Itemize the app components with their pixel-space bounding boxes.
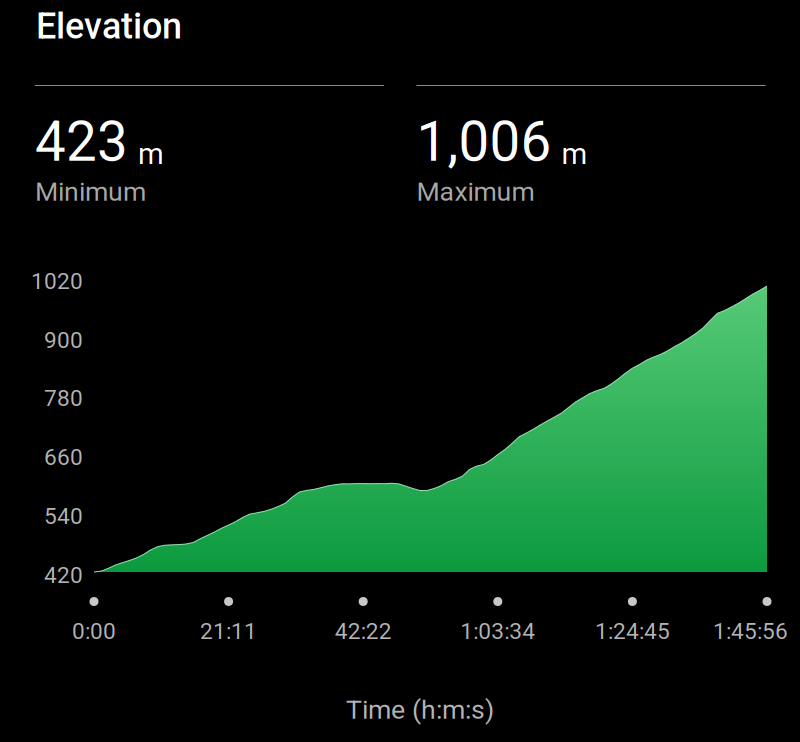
staticText: 42:22	[335, 618, 392, 645]
staticText: Elevation	[36, 5, 182, 47]
staticText: Maximum	[416, 176, 534, 207]
staticText: m	[561, 137, 587, 171]
staticText: 1,006	[416, 110, 551, 174]
staticText: 540	[44, 503, 83, 530]
staticText: 423	[35, 110, 128, 174]
staticText: 0:00	[72, 618, 116, 645]
staticText: 21:11	[200, 618, 257, 645]
staticText: 780	[44, 385, 83, 412]
staticText: 660	[44, 444, 83, 471]
staticText: 1:03:34	[460, 618, 535, 645]
staticText: 900	[44, 327, 83, 354]
staticText: 1:45:56	[713, 618, 788, 645]
button[interactable]: Elevation chart, 423 to 1,006 metres ove…	[94, 286, 767, 572]
staticText: m	[138, 137, 164, 171]
staticText: 1:24:45	[595, 618, 670, 645]
staticText: Minimum	[35, 176, 146, 207]
button[interactable]: 1,006	[416, 85, 765, 207]
staticText: 1020	[31, 268, 83, 295]
button[interactable]: 423	[35, 85, 384, 207]
staticText: Time (h:m:s)	[346, 694, 494, 725]
staticText: 420	[44, 562, 83, 589]
